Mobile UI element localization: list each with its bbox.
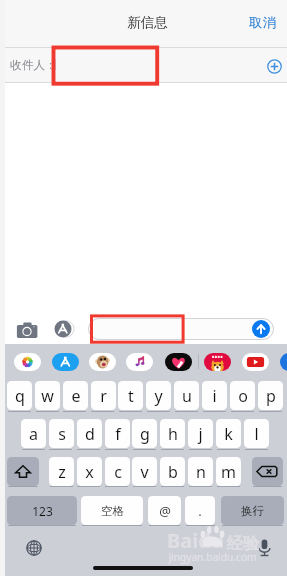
button[interactable]: s xyxy=(49,419,74,448)
button[interactable]: v xyxy=(132,457,157,486)
staticText: j xyxy=(198,423,203,445)
staticText: f xyxy=(115,423,121,445)
staticText: s xyxy=(58,423,66,445)
staticText: q xyxy=(15,385,25,407)
button[interactable]: x xyxy=(77,457,102,486)
button[interactable]: i xyxy=(202,381,227,410)
button[interactable]: d xyxy=(77,419,102,448)
button[interactable]: q xyxy=(7,381,32,410)
staticText: p xyxy=(266,385,276,407)
button[interactable]: Add contact xyxy=(267,59,282,74)
button[interactable]: Shift xyxy=(7,457,39,486)
staticText: m xyxy=(221,461,236,483)
button[interactable]: 空格 xyxy=(81,496,143,525)
staticText: b xyxy=(168,461,178,483)
button[interactable]: p xyxy=(258,381,283,410)
button[interactable]: Stickers xyxy=(204,353,231,371)
staticText: v xyxy=(140,461,149,483)
staticText: h xyxy=(168,423,178,445)
staticText: a xyxy=(29,423,38,445)
staticText: 新信息 xyxy=(127,14,168,31)
button[interactable]: e xyxy=(63,381,88,410)
staticText: 收件人： xyxy=(10,58,57,73)
button[interactable]: g xyxy=(132,419,157,448)
staticText: 换行 xyxy=(241,504,264,518)
staticText: d xyxy=(85,423,95,445)
button[interactable]: Backspace xyxy=(252,457,283,486)
staticText: . xyxy=(198,502,202,520)
button[interactable]: z xyxy=(49,457,74,486)
button[interactable]: Camera xyxy=(16,321,38,341)
button[interactable]: Switch keyboard xyxy=(26,540,42,556)
button[interactable]: More xyxy=(280,353,287,371)
staticText: g xyxy=(140,423,150,445)
button[interactable]: o xyxy=(230,381,255,410)
staticText: jingyan.baidu.com xyxy=(168,550,257,564)
staticText: c xyxy=(114,461,122,483)
button[interactable]: l xyxy=(244,419,269,448)
button[interactable]: @ xyxy=(148,496,181,525)
button[interactable]: 换行 xyxy=(221,496,284,525)
staticText: y xyxy=(154,385,163,407)
button[interactable]: App Store xyxy=(54,320,72,338)
button[interactable]: Music xyxy=(126,353,153,371)
staticText: o xyxy=(238,385,248,407)
staticText: 取消 xyxy=(249,14,276,31)
button[interactable] xyxy=(88,318,274,340)
staticText: w xyxy=(41,385,54,407)
button[interactable]: 123 xyxy=(7,496,77,525)
button[interactable]: u xyxy=(174,381,199,410)
staticText: t xyxy=(128,385,134,407)
button[interactable]: f xyxy=(105,419,130,448)
staticText: 空格 xyxy=(101,504,124,518)
staticText: u xyxy=(182,385,192,407)
button[interactable]: j xyxy=(188,419,213,448)
button[interactable]: Dictate xyxy=(258,538,271,557)
staticText: Baidu xyxy=(167,527,224,554)
button[interactable]: c xyxy=(105,457,130,486)
button[interactable]: Photos xyxy=(14,353,41,371)
staticText: e xyxy=(71,385,81,407)
button[interactable]: 取消 xyxy=(246,11,279,34)
button[interactable]: b xyxy=(160,457,185,486)
staticText: @ xyxy=(159,502,171,520)
button[interactable]: w xyxy=(35,381,60,410)
button[interactable]: n xyxy=(188,457,213,486)
staticText: n xyxy=(196,461,206,483)
button[interactable]: r xyxy=(91,381,116,410)
staticText: 经验 xyxy=(226,533,260,554)
button[interactable]: a xyxy=(21,419,46,448)
staticText: 123 xyxy=(32,503,53,519)
button[interactable]: Fitness xyxy=(165,353,192,371)
button[interactable]: App Store xyxy=(52,353,79,371)
button[interactable]: Send xyxy=(252,320,270,338)
button[interactable]: . xyxy=(185,496,215,525)
staticText: x xyxy=(85,461,94,483)
button[interactable]: k xyxy=(216,419,241,448)
staticText: z xyxy=(58,461,66,483)
button[interactable]: m xyxy=(216,457,241,486)
staticText: r xyxy=(100,385,107,407)
staticText: l xyxy=(254,423,259,445)
button[interactable]: y xyxy=(146,381,171,410)
button[interactable]: h xyxy=(160,419,185,448)
button[interactable]: t xyxy=(118,381,143,410)
staticText: i xyxy=(212,385,217,407)
button[interactable]: Memoji xyxy=(89,353,116,371)
button[interactable]: YouTube xyxy=(242,353,269,371)
staticText: k xyxy=(224,423,233,445)
